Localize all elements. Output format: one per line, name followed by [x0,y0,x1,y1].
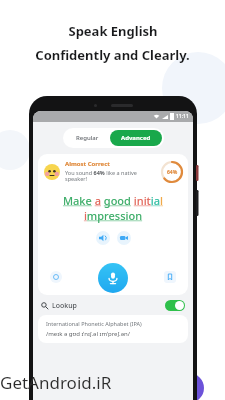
button[interactable]: Toggle lookup [165,300,185,311]
staticText: Make a good initial impression [46,193,180,223]
button[interactable]: Advanced [110,130,162,146]
staticText: Regular [76,134,99,142]
button[interactable]: Play video [117,231,131,245]
button[interactable]: Record [98,263,128,293]
staticText: 11:11 [176,113,189,120]
button[interactable]: Lookup [41,300,185,311]
staticText: Almost Correct [65,160,110,168]
staticText: GetAndroid.iR [0,371,112,394]
staticText: Speak English [68,22,158,40]
staticText: You sound 64% like a native speaker! [65,169,158,183]
button[interactable]: Play audio [96,231,110,245]
staticText: 64% [167,169,178,176]
button[interactable]: Regular [65,130,110,146]
staticText: Confidently and Clearly. [35,46,190,64]
button[interactable]: Bookmark [164,271,176,283]
staticText: Lookup [52,301,77,311]
staticText: International Phonetic Alphabet (IPA) [46,320,142,327]
staticText: Advanced [121,134,151,142]
staticText: /meɪk ə ɡʊd ɪˈnɪʃ.əl ɪmˈpreʃ.ən/ [46,330,130,338]
button[interactable]: Slow playback [50,271,62,283]
